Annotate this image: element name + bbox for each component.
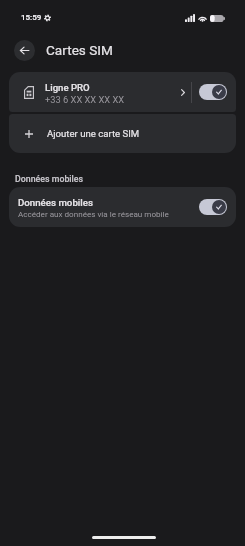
staticText: Accéder aux données via le réseau mobile — [18, 209, 169, 218]
staticText: Ligne PRO — [45, 82, 90, 93]
staticText: Données mobiles — [15, 174, 84, 184]
staticText: Cartes SIM — [46, 42, 113, 58]
button[interactable]: Activer — [199, 199, 227, 215]
button[interactable]: Données mobiles — [9, 187, 236, 227]
button[interactable]: Activer — [199, 84, 227, 100]
button[interactable]: Ligne PRO — [9, 72, 191, 112]
button[interactable]: Back — [14, 40, 35, 61]
staticText: +33 6 XX XX XX XX — [45, 94, 125, 105]
staticText: Ajouter une carte SIM — [47, 128, 140, 139]
button[interactable]: Ajouter une carte SIM — [9, 114, 236, 153]
staticText: Données mobiles — [18, 197, 93, 208]
staticText: 15:59 — [21, 13, 42, 22]
